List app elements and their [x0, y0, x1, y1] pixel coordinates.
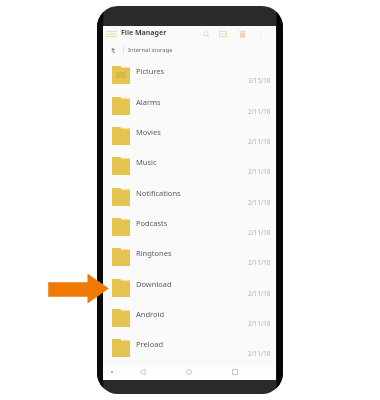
- button[interactable]: Back: [135, 365, 149, 379]
- staticText: File Manager: [121, 28, 167, 38]
- button[interactable]: Alarms: [103, 91, 276, 121]
- staticText: Android: [136, 309, 165, 319]
- staticText: 2/11/18: [248, 167, 271, 175]
- button[interactable]: Download: [103, 273, 276, 303]
- button[interactable]: Android: [103, 303, 276, 333]
- button[interactable]: Move: [216, 27, 230, 41]
- button[interactable]: Navigation menu: [104, 27, 118, 41]
- button[interactable]: Music: [103, 151, 276, 181]
- button[interactable]: Movies: [103, 121, 276, 151]
- staticText: 2/11/18: [248, 349, 271, 357]
- button[interactable]: Search: [199, 27, 213, 41]
- staticText: Internal storage: [128, 46, 173, 54]
- staticText: Download: [136, 279, 172, 289]
- staticText: Preload: [136, 339, 164, 349]
- staticText: Podcasts: [136, 218, 168, 228]
- staticText: Notifications: [136, 188, 181, 198]
- button[interactable]: Home: [182, 365, 196, 379]
- button[interactable]: Ringtones: [103, 242, 276, 272]
- button[interactable]: More options: [254, 27, 268, 41]
- staticText: 2/11/18: [248, 319, 271, 327]
- staticText: Movies: [136, 127, 161, 137]
- staticText: 3/15/18: [248, 76, 271, 84]
- button[interactable]: Pictures: [103, 60, 276, 90]
- staticText: 2/11/18: [248, 107, 271, 115]
- staticText: Ringtones: [136, 248, 172, 258]
- staticText: 2/11/18: [248, 137, 271, 145]
- staticText: Pictures: [136, 66, 165, 76]
- button[interactable]: Delete: [235, 27, 249, 41]
- button[interactable]: Notifications: [103, 182, 276, 212]
- button[interactable]: Podcasts: [103, 212, 276, 242]
- staticText: 2/11/18: [248, 258, 271, 266]
- staticText: Alarms: [136, 97, 161, 107]
- staticText: Music: [136, 157, 157, 167]
- staticText: 2/11/18: [248, 289, 271, 297]
- staticText: 2/11/18: [248, 228, 271, 236]
- button[interactable]: Recent apps: [228, 365, 242, 379]
- staticText: 2/11/18: [248, 198, 271, 206]
- button[interactable]: Preload: [103, 333, 276, 363]
